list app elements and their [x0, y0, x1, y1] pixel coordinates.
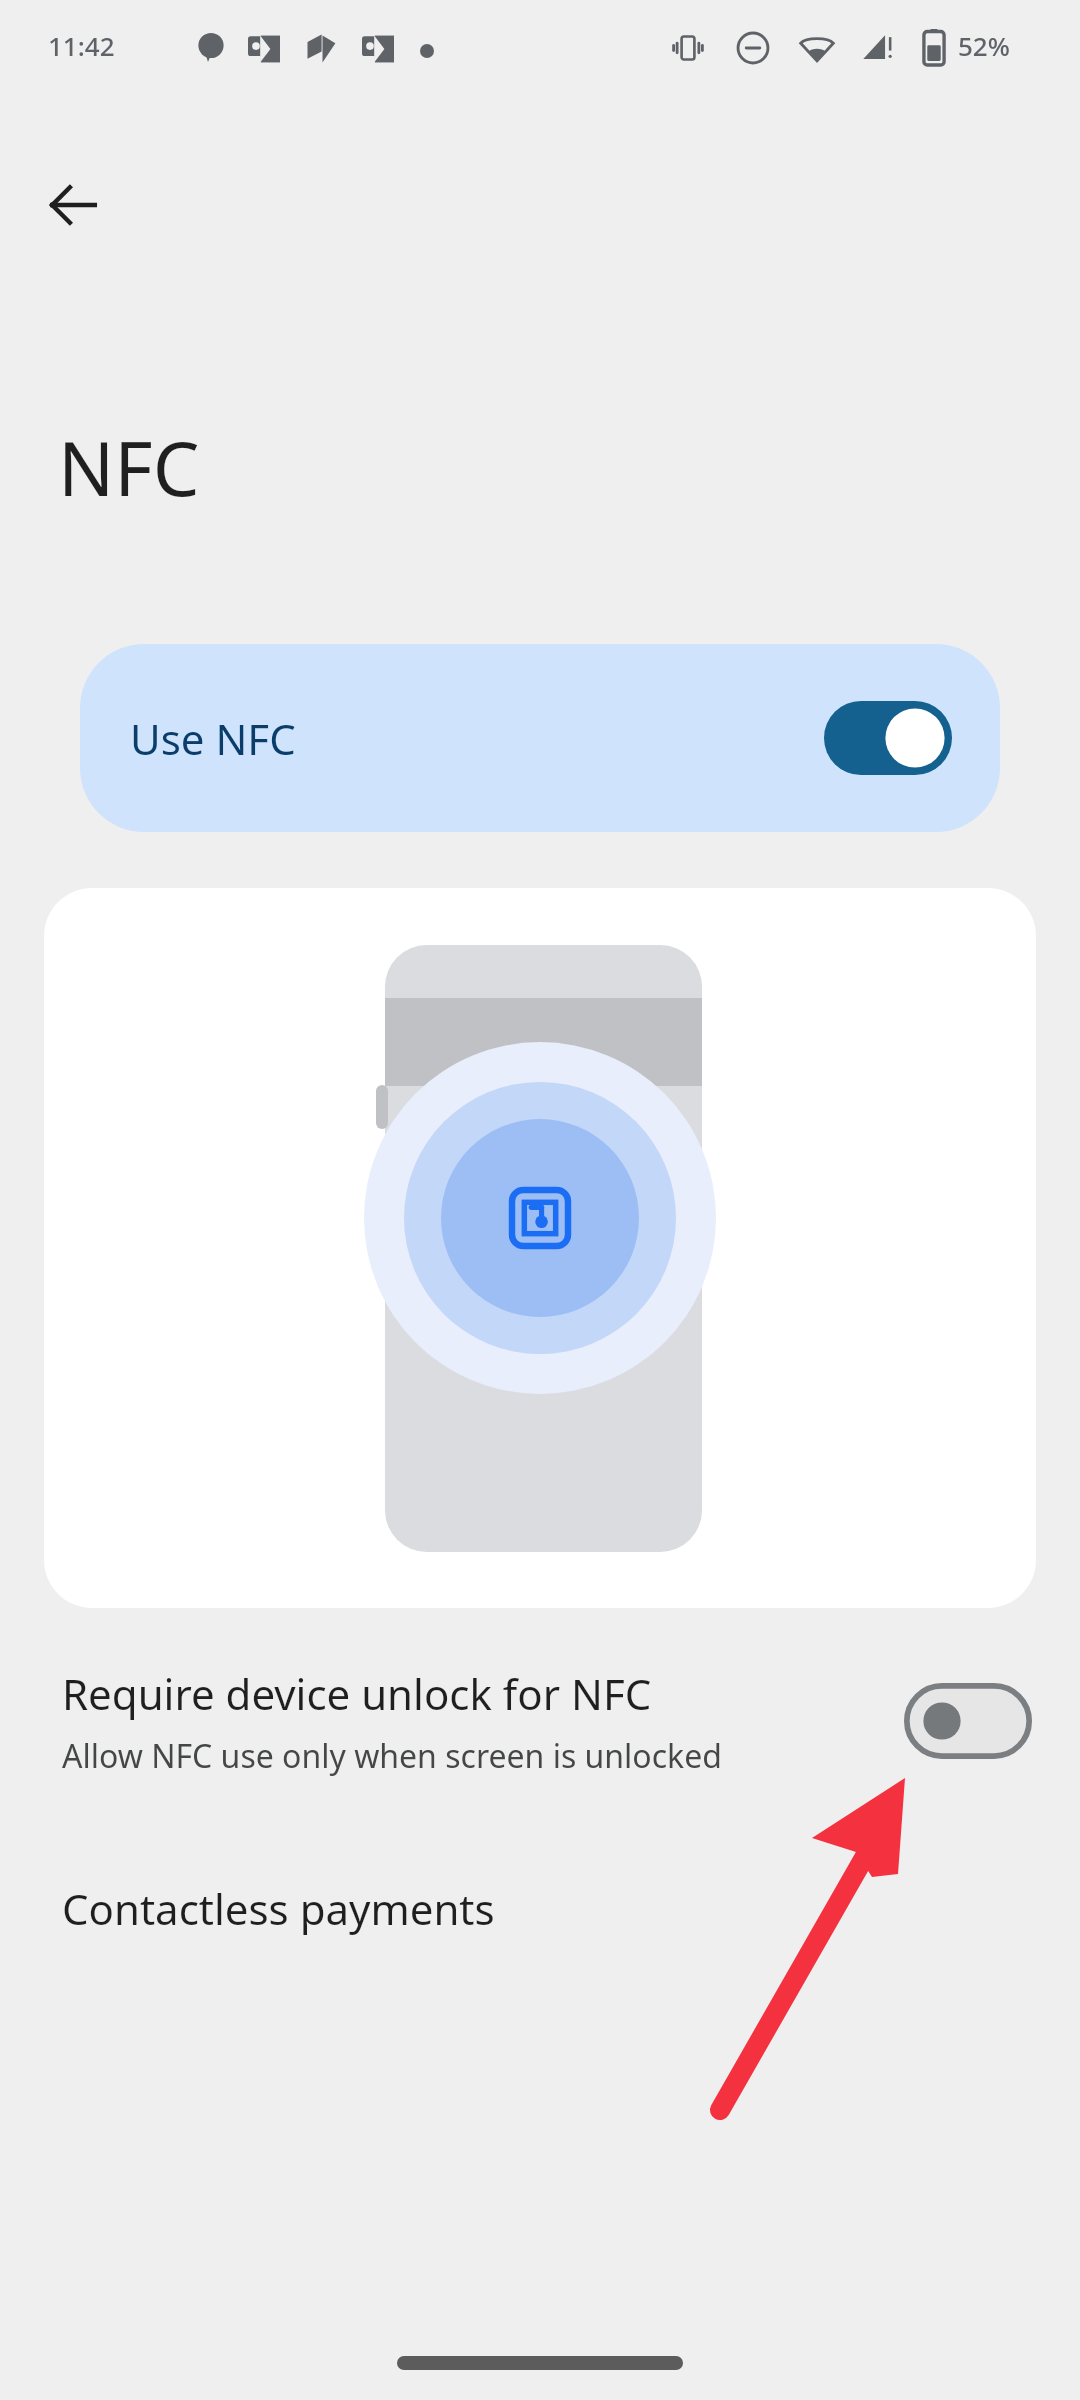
staticText: Allow NFC use only when screen is unlock…	[62, 1734, 722, 1778]
staticText: Contactless payments	[62, 1880, 495, 1937]
staticText: Require device unlock for NFC	[62, 1665, 652, 1722]
button[interactable]: Use NFC	[80, 644, 1000, 832]
staticText: Use NFC	[130, 710, 296, 767]
button[interactable]: Back	[20, 152, 126, 258]
staticText: 52%	[958, 28, 1010, 63]
staticText: 11:42	[48, 28, 115, 63]
button[interactable]: Require device unlock for NFC	[0, 1626, 1080, 1816]
staticText: NFC	[58, 417, 200, 518]
button[interactable]: Contactless payments	[0, 1838, 1080, 1978]
